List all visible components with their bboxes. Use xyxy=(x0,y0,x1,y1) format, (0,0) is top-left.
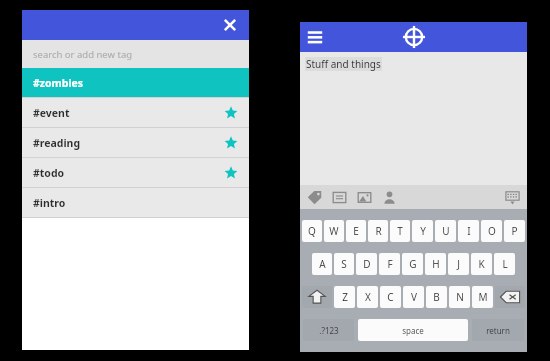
button[interactable]: Image xyxy=(357,190,372,205)
button[interactable]: Tag xyxy=(307,190,322,205)
button[interactable]: P xyxy=(504,220,525,242)
button[interactable]: #todo xyxy=(22,158,249,187)
button[interactable]: return xyxy=(472,319,524,341)
staticText: space xyxy=(402,325,424,336)
staticText: Q xyxy=(308,224,316,238)
staticText: L xyxy=(502,257,508,271)
button[interactable]: #reading xyxy=(22,128,249,157)
button[interactable]: T xyxy=(390,220,410,242)
staticText: #zombies xyxy=(33,76,84,90)
staticText: B xyxy=(433,290,440,304)
button[interactable]: Person xyxy=(382,190,397,205)
button[interactable]: Close xyxy=(217,12,243,38)
button[interactable]: V xyxy=(403,286,424,308)
staticText: P xyxy=(511,224,518,238)
staticText: T xyxy=(397,224,403,238)
staticText: #reading xyxy=(33,136,81,150)
button[interactable]: R xyxy=(368,220,388,242)
staticText: D xyxy=(363,257,371,271)
staticText: V xyxy=(411,290,417,304)
button[interactable]: S xyxy=(334,253,354,275)
button[interactable]: E xyxy=(346,220,366,242)
button[interactable]: Note xyxy=(332,190,347,205)
button[interactable]: Favorite xyxy=(224,106,238,120)
staticText: Y xyxy=(420,224,426,238)
button[interactable]: L xyxy=(494,253,515,275)
staticText: W xyxy=(329,224,339,238)
button[interactable]: Hide keyboard xyxy=(505,190,520,205)
button[interactable]: U xyxy=(435,220,456,242)
staticText: X xyxy=(365,290,371,304)
button[interactable]: X xyxy=(357,286,378,308)
button[interactable]: Q xyxy=(302,220,322,242)
button[interactable]: H xyxy=(425,253,446,275)
button[interactable]: space xyxy=(358,319,468,341)
button[interactable]: B xyxy=(426,286,447,308)
staticText: S xyxy=(341,257,347,271)
button[interactable]: F xyxy=(379,253,400,275)
button[interactable]: .?123 xyxy=(303,319,354,341)
staticText: U xyxy=(442,224,450,238)
button[interactable]: A xyxy=(312,253,332,275)
button[interactable]: C xyxy=(380,286,401,308)
button[interactable]: D xyxy=(356,253,377,275)
staticText: G xyxy=(409,257,417,271)
staticText: #intro xyxy=(33,196,66,210)
staticText: I xyxy=(467,224,471,238)
staticText: C xyxy=(387,290,394,304)
button[interactable]: Z xyxy=(334,286,355,308)
button[interactable]: Stuff and things xyxy=(300,52,527,185)
staticText: F xyxy=(387,257,393,271)
staticText: #event xyxy=(33,106,70,120)
staticText: Stuff and things xyxy=(306,57,381,71)
button[interactable]: #zombies xyxy=(22,68,249,97)
button[interactable]: Y xyxy=(412,220,433,242)
staticText: #todo xyxy=(33,166,65,180)
staticText: Z xyxy=(342,290,348,304)
staticText: .?123 xyxy=(319,325,339,336)
button[interactable]: M xyxy=(472,286,493,308)
button[interactable]: Favorite xyxy=(224,136,238,150)
staticText: H xyxy=(432,257,440,271)
button[interactable]: W xyxy=(324,220,344,242)
button[interactable]: N xyxy=(449,286,470,308)
button[interactable]: #intro xyxy=(22,188,249,217)
button[interactable]: Menu xyxy=(306,29,324,45)
button[interactable]: #event xyxy=(22,98,249,127)
staticText: N xyxy=(456,290,464,304)
button[interactable]: J xyxy=(448,253,469,275)
staticText: R xyxy=(375,224,382,238)
button[interactable]: I xyxy=(458,220,479,242)
button[interactable]: Favorite xyxy=(224,166,238,180)
staticText: E xyxy=(353,224,359,238)
staticText: O xyxy=(488,224,496,238)
button[interactable]: Backspace xyxy=(495,286,525,308)
staticText: return xyxy=(486,325,510,336)
staticText: search or add new tag xyxy=(33,48,133,61)
staticText: J xyxy=(457,257,460,271)
button[interactable]: Target xyxy=(402,25,426,49)
button[interactable]: K xyxy=(471,253,492,275)
button[interactable]: G xyxy=(402,253,423,275)
button[interactable]: Shift xyxy=(302,286,332,308)
button[interactable]: O xyxy=(481,220,502,242)
staticText: K xyxy=(478,257,485,271)
button[interactable]: search or add new tag xyxy=(22,40,249,68)
staticText: A xyxy=(319,257,326,271)
staticText: M xyxy=(478,290,488,304)
